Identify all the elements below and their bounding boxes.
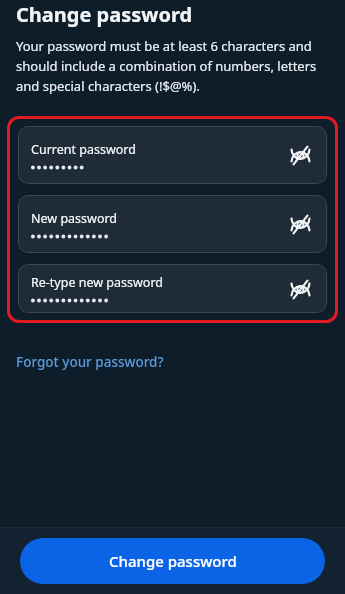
staticText: Change password [109,551,237,571]
staticText: Your password must be at least 6 charact… [16,37,333,95]
staticText: Change password [16,1,193,28]
button[interactable]: Show Re-type new password [283,272,317,306]
button[interactable]: New password [18,195,327,253]
button[interactable]: Forgot your password? [8,349,172,375]
staticText: Re-type new password [31,274,163,291]
staticText: Forgot your password? [16,353,164,371]
button[interactable]: Show New password [283,207,317,241]
button[interactable]: Change password [20,538,325,584]
button[interactable]: Show Current password [283,138,317,172]
button[interactable]: Re-type new password [18,264,327,313]
button[interactable]: Current password [18,126,327,184]
staticText: New password [31,210,118,227]
staticText: Current password [31,141,136,158]
